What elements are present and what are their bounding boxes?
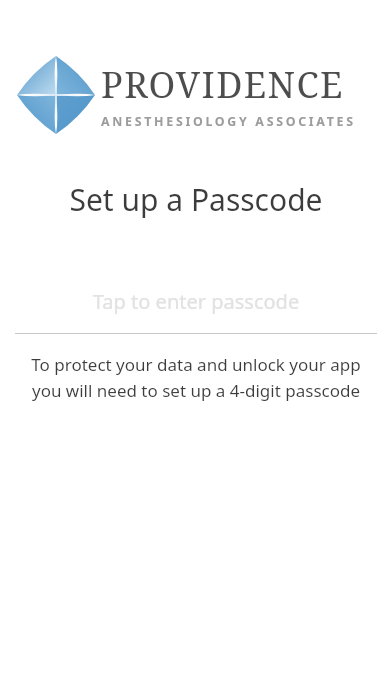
staticText: Set up a Passcode — [0, 179, 392, 220]
staticText: Tap to enter passcode — [15, 288, 377, 315]
other: Providence logo — [17, 56, 95, 134]
staticText: PROVIDENCE — [101, 60, 344, 109]
staticText: To protect your data and unlock your app… — [24, 353, 368, 402]
staticText: ANESTHESIOLOGY ASSOCIATES — [101, 113, 356, 130]
button[interactable]: Tap to enter passcode — [0, 288, 392, 334]
